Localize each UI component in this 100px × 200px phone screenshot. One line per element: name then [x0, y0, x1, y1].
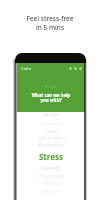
button[interactable]: Pregnancy	[17, 173, 85, 180]
button[interactable]: Covid-19	[17, 188, 85, 195]
button[interactable]: Calm	[21, 66, 32, 71]
button[interactable]: Insomnia	[17, 121, 85, 128]
button[interactable]: Pick a topic	[17, 113, 85, 117]
button[interactable]: Self-esteem	[17, 135, 85, 142]
button[interactable]: Sleep	[17, 128, 85, 135]
button[interactable]: Meditation	[17, 142, 85, 149]
button[interactable]: Action	[74, 67, 77, 70]
button[interactable]: Stress	[17, 151, 85, 162]
staticText: What can we help you with?	[17, 92, 85, 103]
staticText: Feel stress-free in 5 mins	[0, 14, 100, 32]
button[interactable]: Burnout	[17, 180, 85, 187]
button[interactable]: Action	[69, 67, 72, 70]
button[interactable]: Anxiety	[17, 165, 85, 172]
button[interactable]: Action	[79, 67, 82, 70]
staticText: Hi there,	[17, 85, 85, 89]
